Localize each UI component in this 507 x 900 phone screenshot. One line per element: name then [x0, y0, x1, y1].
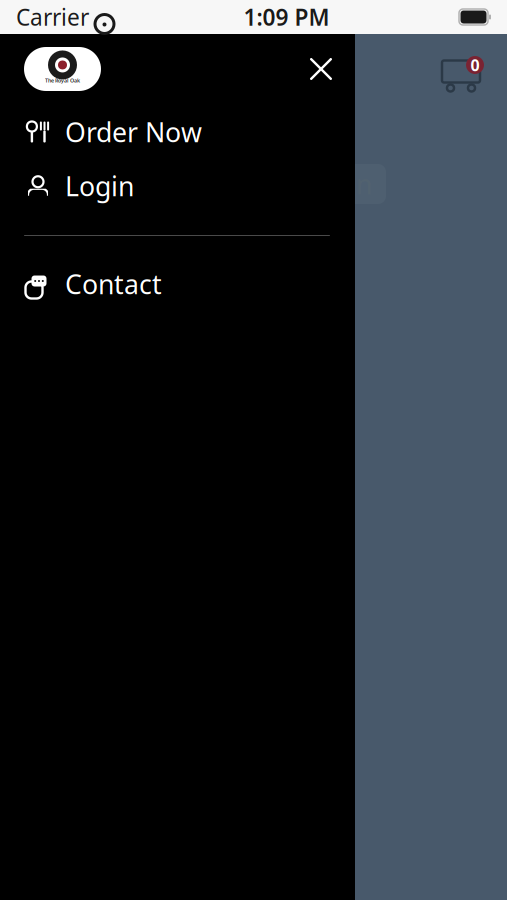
button[interactable]: Choose [38, 283, 136, 329]
button[interactable]: Order Now [0, 110, 355, 154]
button[interactable]: Close menu [299, 47, 343, 91]
staticText: Gin [330, 166, 372, 202]
staticText: Contact [65, 266, 162, 302]
button[interactable]: Contact [0, 262, 355, 306]
staticText: Login [65, 168, 134, 204]
staticText: Carrier [16, 2, 89, 32]
staticText: The Royal Oak [45, 77, 80, 84]
staticText: 1:09 PM [243, 2, 329, 32]
staticText: 0 [470, 54, 479, 76]
staticText: Dark Cheshire [20, 234, 206, 269]
staticText: Order Now [65, 114, 202, 150]
button[interactable]: Login [0, 164, 355, 208]
staticText: Whisky [19, 166, 108, 202]
staticText: Choose [39, 289, 134, 324]
staticText: Vodka [130, 166, 206, 202]
button[interactable]: Cart [435, 54, 487, 98]
